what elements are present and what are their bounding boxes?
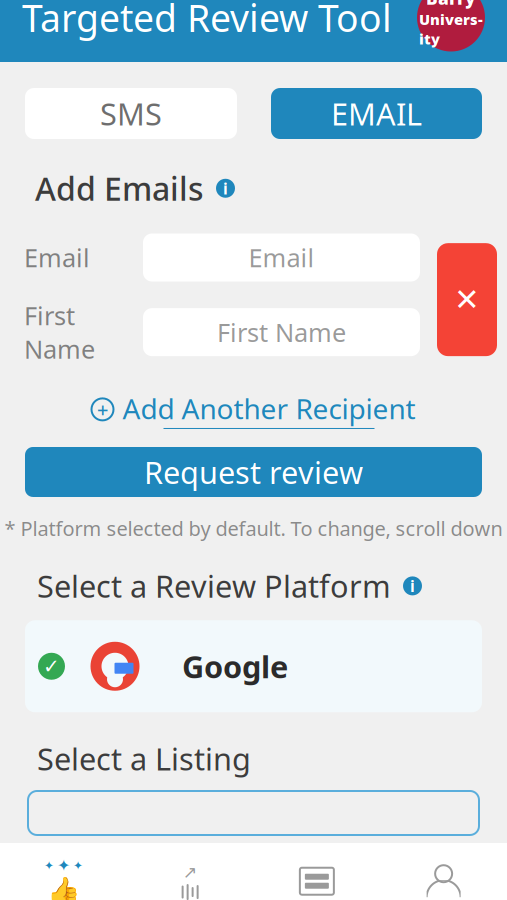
staticText: First Name	[24, 298, 95, 366]
button[interactable]: Remove recipient	[437, 243, 497, 356]
staticText: ✦	[73, 859, 83, 872]
staticText: Google	[182, 646, 288, 687]
button[interactable]: ✦	[0, 858, 127, 900]
staticText: i	[223, 178, 228, 199]
staticText: ✦	[57, 856, 70, 875]
staticText: Select a Listing	[37, 738, 251, 779]
staticText: ✦	[44, 859, 54, 872]
staticText: EMAIL	[331, 93, 422, 134]
staticText: Email	[24, 241, 90, 274]
button[interactable]: ✓	[25, 620, 482, 712]
staticText: SMS	[100, 93, 162, 134]
staticText: Email	[248, 241, 314, 274]
button[interactable]: Request review	[25, 447, 482, 497]
staticText: ↗	[183, 862, 198, 882]
staticText: Add Emails	[35, 167, 204, 209]
staticText: Targeted Review Tool	[22, 0, 392, 42]
staticText: 👍	[47, 876, 80, 900]
staticText: +	[97, 396, 108, 423]
staticText: University	[419, 9, 483, 48]
button[interactable]: ↗	[127, 858, 254, 900]
staticText: First Name	[217, 315, 346, 349]
button[interactable]: SMS	[25, 88, 237, 139]
staticText: i	[410, 575, 415, 596]
staticText: Add Another Recipient	[122, 390, 415, 427]
staticText: Barry	[426, 0, 476, 9]
staticText: ✕	[454, 282, 480, 317]
staticText: ✓	[43, 655, 60, 678]
button[interactable]: EMAIL	[271, 88, 482, 139]
staticText: * Platform selected by default. To chang…	[4, 515, 502, 542]
staticText: Request review	[144, 452, 363, 492]
button[interactable]: MY PROFILE	[380, 858, 507, 900]
staticText: Select a Review Platform	[37, 565, 391, 606]
button[interactable]: DASHBOARD	[253, 858, 380, 900]
button[interactable]: +	[0, 386, 507, 433]
